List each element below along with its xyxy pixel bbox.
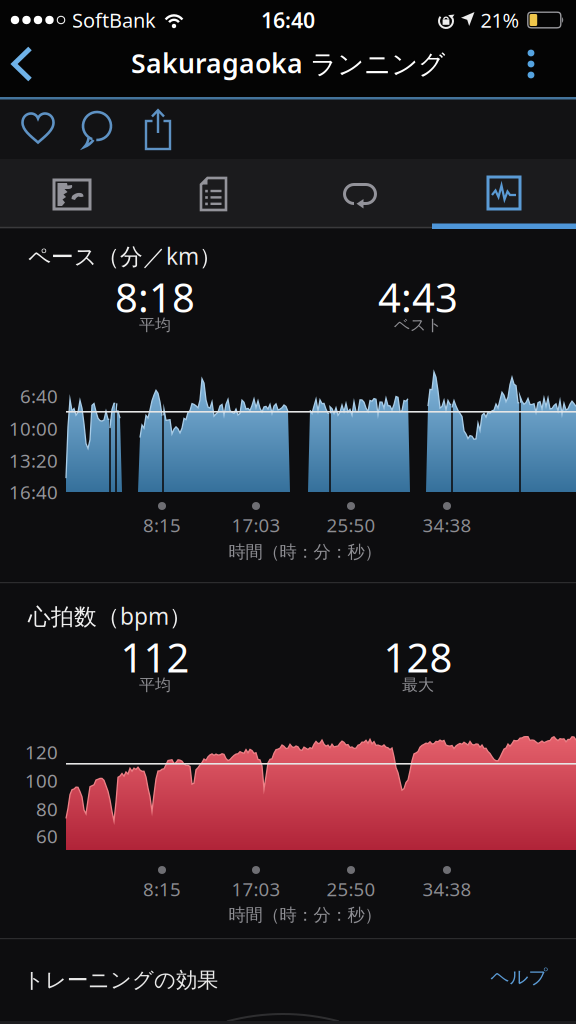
staticText: 17:03 (231, 877, 280, 901)
button[interactable]: More options (509, 42, 553, 86)
staticText: Sakuragaoka ランニング (131, 45, 445, 81)
button[interactable]: ヘルプ (490, 965, 547, 988)
button[interactable]: Comment (75, 107, 119, 151)
staticText: 最大 (402, 675, 434, 695)
staticText: 時間（時：分：秒） (228, 541, 381, 563)
staticText: ヘルプ (490, 965, 547, 988)
staticText: 4:43 (378, 270, 458, 323)
staticText: 平均 (139, 315, 171, 335)
staticText: 128 (383, 630, 452, 683)
staticText: 6:40 (20, 384, 58, 408)
staticText: 60 (36, 824, 58, 848)
button[interactable]: Map (42, 166, 102, 222)
button[interactable]: Details (186, 166, 246, 222)
staticText: 8:18 (115, 270, 195, 323)
staticText: 25:50 (326, 877, 375, 901)
staticText: SoftBank (72, 7, 156, 33)
staticText: 16:40 (261, 6, 315, 34)
staticText: 8:15 (143, 513, 181, 537)
staticText: トレーニングの効果 (23, 967, 218, 993)
staticText: 34:38 (422, 513, 471, 537)
staticText: 平均 (139, 675, 171, 695)
button[interactable]: Like (16, 107, 60, 151)
staticText: 34:38 (422, 877, 471, 901)
staticText: 16:40 (9, 480, 58, 504)
staticText: ペース（分／km） (28, 241, 222, 271)
staticText: 21% (480, 7, 519, 33)
staticText: ベスト (394, 315, 442, 335)
button[interactable]: Back (0, 43, 42, 85)
staticText: 時間（時：分：秒） (228, 904, 381, 926)
staticText: 112 (120, 630, 189, 683)
staticText: 17:03 (231, 513, 280, 537)
staticText: 100 (25, 768, 58, 793)
button[interactable]: Charts (474, 166, 534, 222)
staticText: 心拍数（bpm） (28, 601, 192, 631)
staticText: 8:15 (143, 877, 181, 901)
staticText: 10:00 (9, 416, 58, 441)
staticText: 13:20 (9, 448, 58, 473)
staticText: 25:50 (326, 513, 375, 537)
staticText: 120 (25, 740, 58, 764)
button[interactable]: Laps (330, 166, 390, 222)
staticText: 80 (36, 797, 58, 821)
button[interactable]: Share (136, 107, 180, 151)
